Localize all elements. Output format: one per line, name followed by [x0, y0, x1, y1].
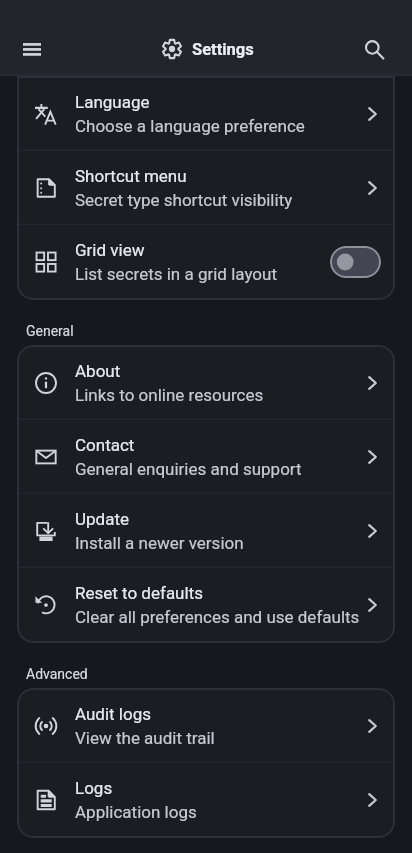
- staticText: Shortcut menu: [75, 166, 187, 186]
- button[interactable]: Logs: [17, 763, 395, 837]
- staticText: View the audit trail: [75, 728, 215, 748]
- staticText: Clear all preferences and use defaults: [75, 607, 360, 627]
- staticText: General enquiries and support: [75, 459, 302, 479]
- button[interactable]: Toggle grid view: [330, 246, 381, 278]
- button[interactable]: Update: [17, 494, 395, 568]
- staticText: Reset to defaults: [75, 583, 203, 603]
- button[interactable]: About: [17, 346, 395, 420]
- button[interactable]: Reset to defaults: [17, 568, 395, 642]
- button[interactable]: Grid view: [17, 225, 395, 299]
- button[interactable]: Audit logs: [17, 689, 395, 763]
- staticText: About: [75, 361, 121, 381]
- staticText: Logs: [75, 778, 113, 798]
- button[interactable]: Menu: [0, 24, 64, 74]
- staticText: Language: [75, 92, 150, 112]
- staticText: Install a newer version: [75, 533, 244, 553]
- button[interactable]: Contact: [17, 420, 395, 494]
- button[interactable]: Shortcut menu: [17, 151, 395, 225]
- staticText: General: [26, 323, 74, 339]
- staticText: Secret type shortcut visibility: [75, 190, 293, 210]
- staticText: Links to online resources: [75, 385, 264, 405]
- staticText: Advanced: [26, 666, 88, 682]
- staticText: List secrets in a grid layout: [75, 264, 277, 284]
- staticText: Grid view: [75, 240, 145, 260]
- staticText: Choose a language preference: [75, 116, 305, 136]
- staticText: Settings: [192, 40, 254, 59]
- button[interactable]: Language: [17, 77, 395, 151]
- staticText: Application logs: [75, 802, 197, 822]
- staticText: Update: [75, 509, 129, 529]
- staticText: Audit logs: [75, 704, 152, 724]
- button[interactable]: Search: [356, 24, 393, 74]
- staticText: Contact: [75, 435, 135, 455]
